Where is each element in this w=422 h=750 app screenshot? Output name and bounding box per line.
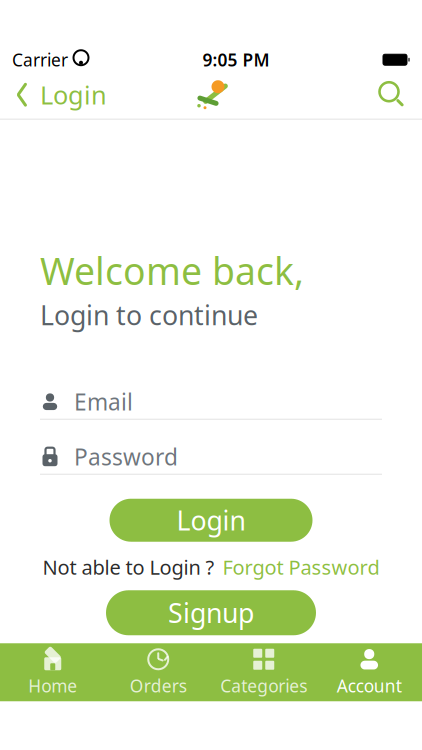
staticText: Carrier [12, 48, 68, 71]
staticText: Password [74, 442, 178, 472]
button[interactable]: Search [362, 71, 422, 119]
staticText: Categories [220, 674, 307, 697]
staticText: 9:05 PM [202, 48, 269, 71]
staticText: Login [40, 78, 107, 111]
staticText: Forgot Password [222, 554, 379, 580]
button[interactable]: Forgot Password [222, 554, 379, 580]
staticText: Login [176, 502, 245, 538]
button[interactable]: Login [0, 71, 121, 119]
staticText: Orders [130, 674, 187, 697]
staticText: Email [74, 387, 133, 417]
button[interactable]: Signup [106, 590, 316, 635]
button[interactable]: Account [316, 643, 422, 701]
button[interactable]: Orders [105, 643, 211, 701]
staticText: Signup [168, 595, 254, 630]
staticText: Account [337, 674, 402, 697]
staticText: Welcome back, [40, 246, 304, 295]
button[interactable]: Login [109, 499, 312, 542]
staticText: Not able to Login ? [42, 554, 214, 580]
button[interactable]: Home [0, 643, 105, 701]
button[interactable]: Categories [211, 643, 316, 701]
staticText: Login to continue [40, 297, 258, 333]
staticText: Home [28, 674, 77, 697]
